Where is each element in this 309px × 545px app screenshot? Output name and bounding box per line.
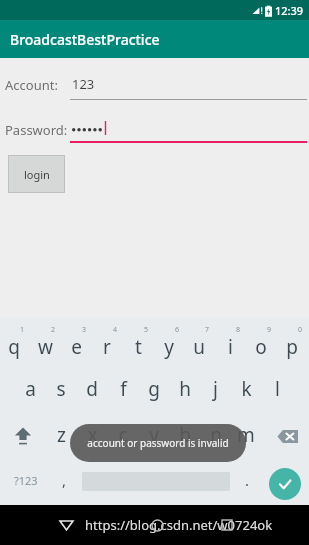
button[interactable]: 3 xyxy=(61,320,91,364)
button[interactable]: Back xyxy=(52,513,80,537)
staticText: i xyxy=(228,334,233,360)
staticText: login xyxy=(24,167,50,182)
staticText: 7 xyxy=(205,325,210,335)
button[interactable]: 8 xyxy=(215,320,245,364)
button[interactable]: 0 xyxy=(277,320,307,364)
button[interactable] xyxy=(80,461,232,499)
staticText: 4 xyxy=(113,325,118,335)
button[interactable]: v xyxy=(139,416,169,456)
button[interactable]: 4 xyxy=(92,320,122,364)
staticText: 3 xyxy=(82,325,87,335)
staticText: h xyxy=(179,376,191,402)
staticText: u xyxy=(193,334,205,360)
button[interactable]: 9 xyxy=(246,320,276,364)
button[interactable]: m xyxy=(231,416,261,456)
button[interactable]: n xyxy=(201,416,231,456)
button[interactable]: 6 xyxy=(154,320,184,364)
staticText: 0 xyxy=(298,325,303,335)
staticText: 8 xyxy=(236,325,241,335)
staticText: Account: xyxy=(5,76,58,94)
staticText: y xyxy=(164,334,174,360)
staticText: w xyxy=(38,334,53,360)
staticText: https://blog.csdn.net/w0724ok xyxy=(85,516,273,534)
button[interactable]: z xyxy=(46,416,76,456)
staticText: s xyxy=(56,376,66,402)
button[interactable]: g xyxy=(139,368,169,408)
staticText: g xyxy=(148,376,160,402)
staticText: l xyxy=(275,376,280,402)
staticText: o xyxy=(255,334,267,360)
button[interactable]: , xyxy=(50,461,78,499)
button[interactable]: d xyxy=(77,368,107,408)
staticText: j xyxy=(213,376,218,402)
button[interactable]: Shift xyxy=(6,416,40,456)
staticText: 12:39 xyxy=(275,3,304,18)
staticText: a xyxy=(25,376,36,402)
button[interactable]: b xyxy=(170,416,200,456)
staticText: k xyxy=(241,376,252,402)
staticText: . xyxy=(245,470,250,490)
staticText: 123 xyxy=(72,75,95,93)
button[interactable]: Backspace xyxy=(270,416,304,456)
staticText: x xyxy=(87,422,98,448)
button[interactable]: 1 xyxy=(0,320,29,364)
button[interactable]: s xyxy=(46,368,76,408)
staticText: 1 xyxy=(20,325,25,335)
button[interactable]: c xyxy=(108,416,138,456)
staticText: ?123 xyxy=(14,473,38,488)
button[interactable]: l xyxy=(262,368,292,408)
button[interactable]: j xyxy=(200,368,230,408)
button[interactable]: . xyxy=(234,461,260,499)
button[interactable]: 7 xyxy=(184,320,214,364)
staticText: p xyxy=(286,334,298,360)
staticText: z xyxy=(57,422,66,448)
staticText: BroadcastBestPractice xyxy=(10,30,160,49)
button[interactable]: f xyxy=(108,368,138,408)
staticText: m xyxy=(237,422,255,448)
button[interactable]: Recents xyxy=(216,514,238,536)
button[interactable]: x xyxy=(77,416,107,456)
button[interactable]: 2 xyxy=(30,320,60,364)
staticText: b xyxy=(179,422,191,448)
staticText: t xyxy=(135,334,142,360)
staticText: Password: xyxy=(5,121,68,139)
staticText: e xyxy=(71,334,82,360)
staticText: c xyxy=(118,422,128,448)
staticText: 5 xyxy=(144,325,149,335)
staticText: account or password is invalid xyxy=(87,436,229,450)
button[interactable]: k xyxy=(231,368,261,408)
button[interactable]: login xyxy=(8,155,65,193)
button[interactable]: a xyxy=(15,368,45,408)
button[interactable]: Enter xyxy=(269,468,301,500)
staticText: , xyxy=(62,470,67,490)
staticText: n xyxy=(210,422,222,448)
staticText: 9 xyxy=(267,325,272,335)
staticText: f xyxy=(120,376,127,402)
button[interactable]: h xyxy=(170,368,200,408)
button[interactable]: ?123 xyxy=(6,461,46,499)
staticText: v xyxy=(149,422,159,448)
staticText: 6 xyxy=(175,325,180,335)
staticText: 2 xyxy=(51,325,56,335)
staticText: r xyxy=(103,334,111,360)
staticText: d xyxy=(86,376,98,402)
button[interactable]: 5 xyxy=(123,320,153,364)
staticText: q xyxy=(8,334,20,360)
button[interactable]: Home xyxy=(146,514,168,536)
